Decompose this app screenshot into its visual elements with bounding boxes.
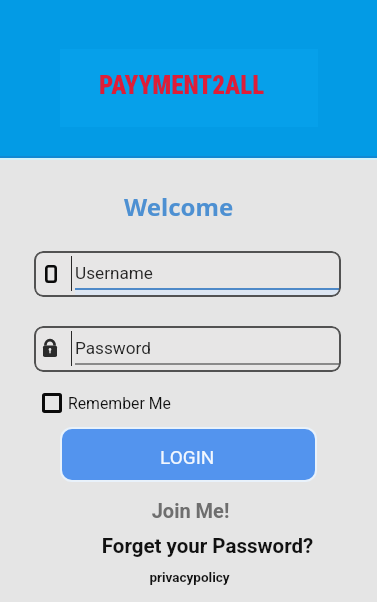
button[interactable]: Join Me! (2, 499, 377, 522)
staticText: Remember Me (68, 394, 171, 413)
staticText: Welcome (124, 190, 234, 223)
button[interactable]: Username (34, 251, 341, 297)
button[interactable]: Forget your Password? (19, 534, 377, 558)
staticText: Password (75, 338, 151, 358)
button[interactable]: LOGIN (62, 429, 315, 480)
button[interactable]: privacypolicy (1, 569, 377, 585)
button[interactable]: Password (34, 326, 341, 372)
button[interactable]: Remember Me (42, 393, 171, 413)
staticText: PAYYMENT2ALL (99, 71, 265, 100)
staticText: Username (75, 263, 153, 283)
staticText: LOGIN (160, 446, 215, 468)
